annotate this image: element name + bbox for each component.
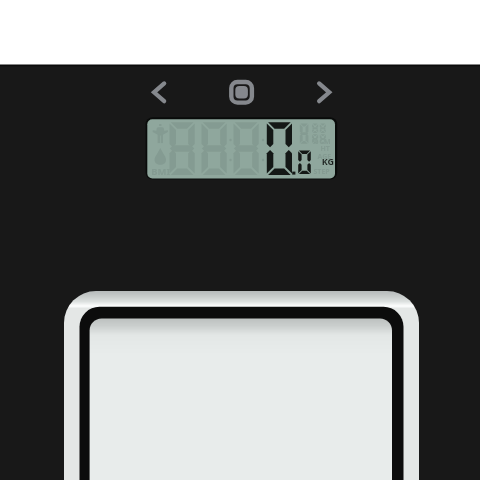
button[interactable]: Weight display 0.0 KG bbox=[146, 117, 338, 180]
button[interactable]: Weighing platform bbox=[64, 291, 419, 480]
button[interactable]: Next user bbox=[304, 72, 344, 112]
button[interactable]: Previous user bbox=[139, 72, 179, 112]
button[interactable]: Set / unit mode bbox=[221, 72, 262, 113]
